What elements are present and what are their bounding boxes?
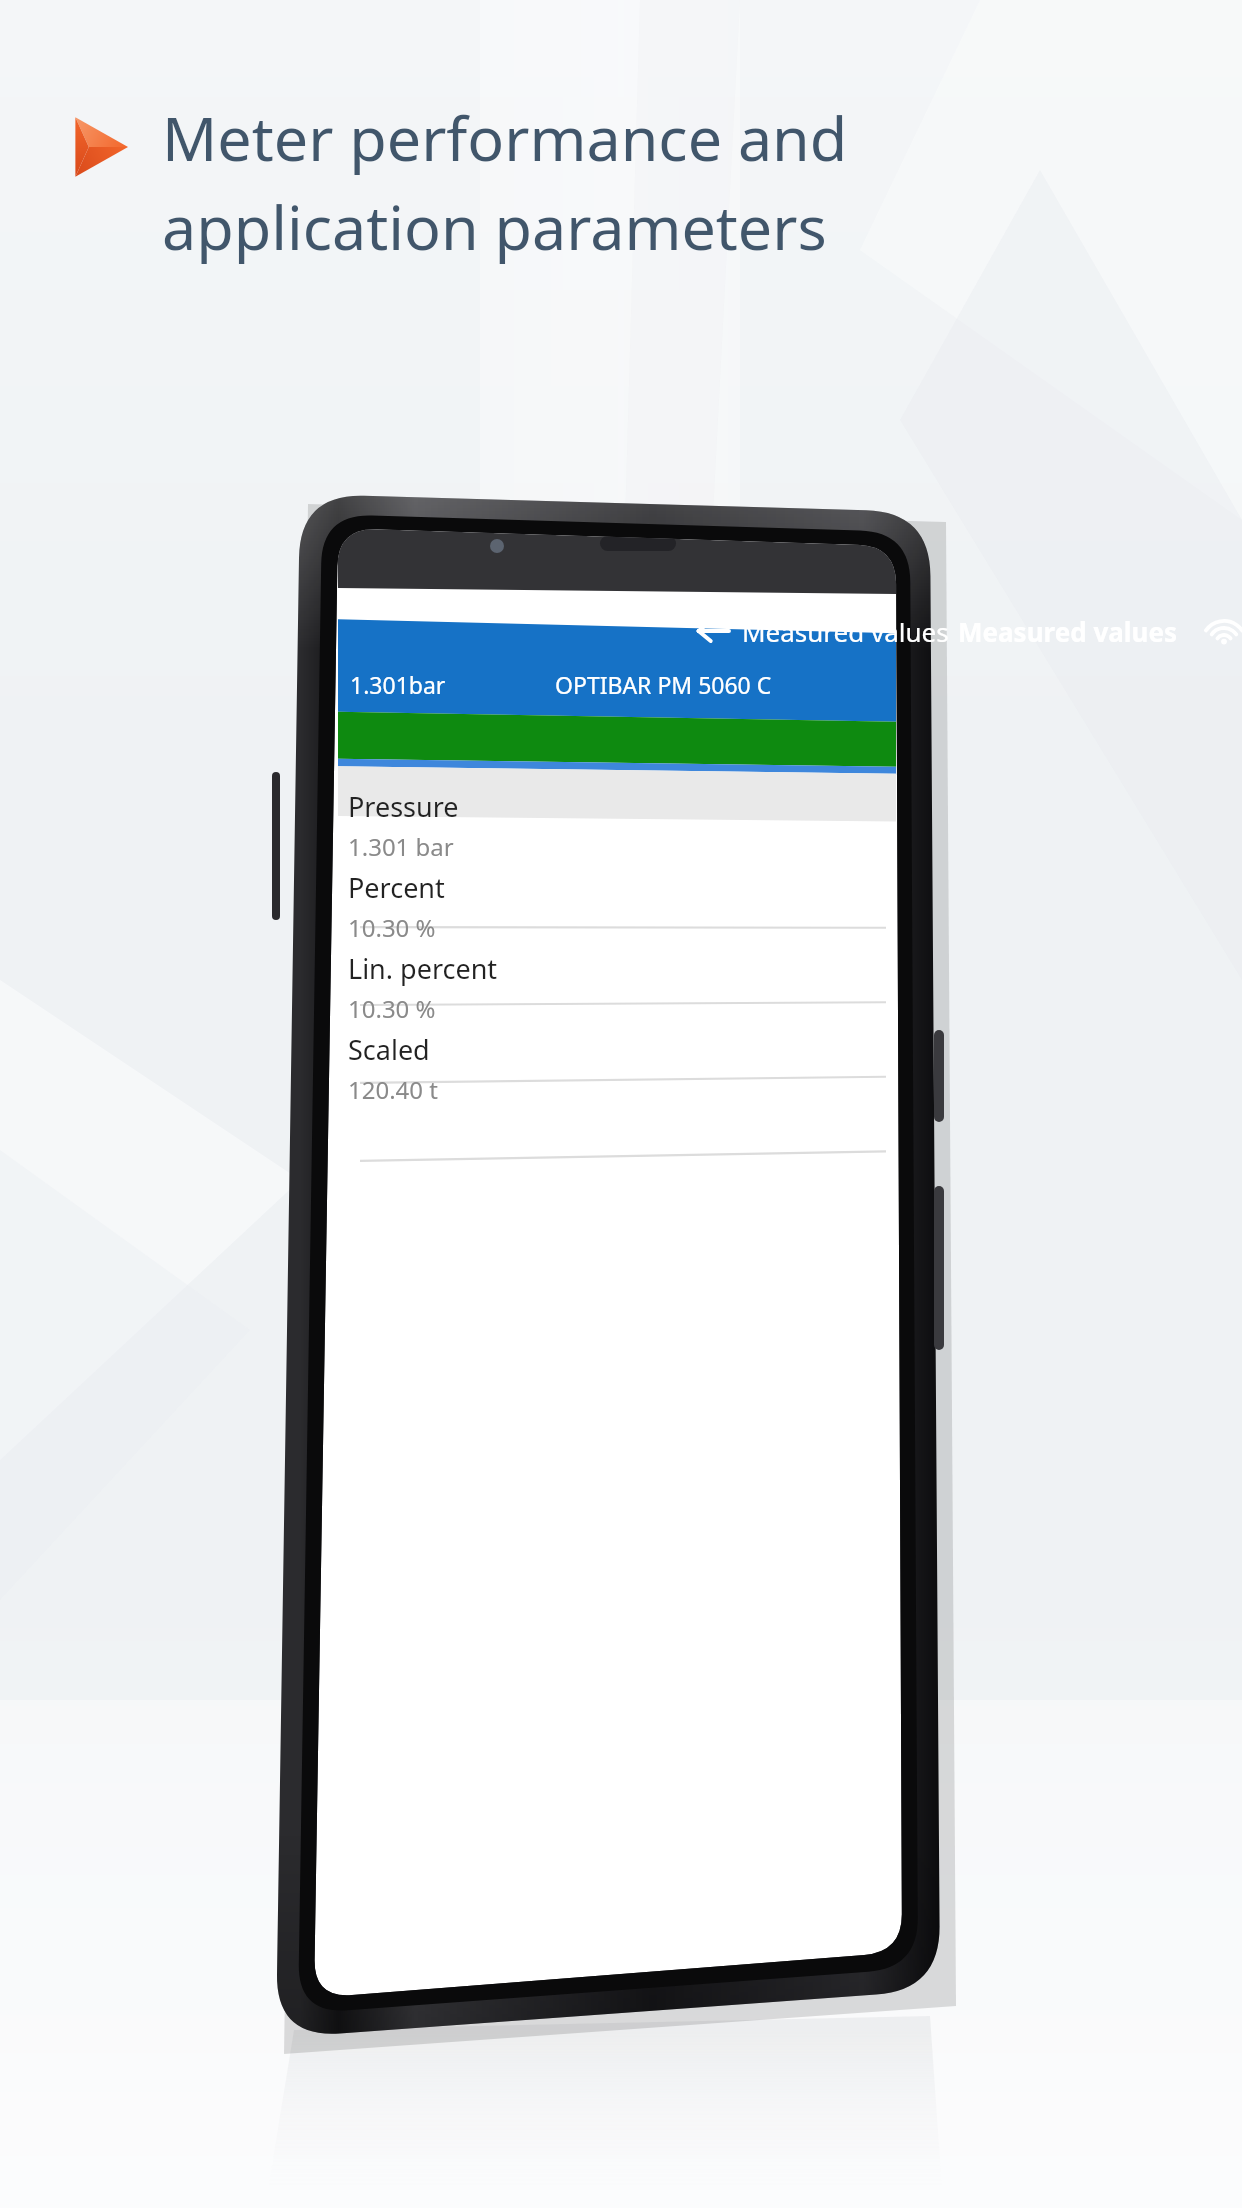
staticText: Pressure — [348, 788, 459, 825]
staticText: Percent — [348, 869, 445, 906]
staticText: 10.30 % — [348, 992, 436, 1025]
staticText: application parameters — [162, 185, 827, 268]
button[interactable]: Wi-Fi connected — [1204, 611, 1242, 651]
button[interactable]: Percent — [348, 867, 908, 945]
button[interactable]: Back — [694, 612, 732, 650]
staticText: Meter performance and — [162, 96, 848, 179]
staticText: 120.40 t — [348, 1073, 438, 1106]
staticText: Scaled — [348, 1031, 430, 1068]
staticText: Measured values — [958, 614, 1178, 649]
staticText: OPTIBAR PM 5060 C — [555, 669, 772, 700]
button[interactable]: Back — [680, 600, 1242, 662]
button[interactable]: Pressure — [348, 786, 908, 864]
other: KROHNE logo — [72, 116, 128, 178]
staticText: Measured values — [742, 614, 949, 649]
button[interactable]: Lin. percent — [348, 948, 908, 1026]
staticText: Lin. percent — [348, 950, 498, 987]
staticText: 1.301bar — [350, 669, 446, 700]
button[interactable]: Scaled — [348, 1029, 908, 1107]
staticText: 1.301 bar — [348, 830, 454, 863]
staticText: 10.30 % — [348, 911, 436, 944]
button[interactable]: 1.301bar — [340, 666, 918, 702]
